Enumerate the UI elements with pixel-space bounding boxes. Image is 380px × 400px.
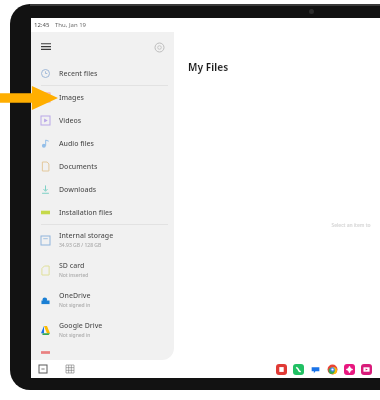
staticText: SD card [59,261,85,271]
button[interactable]: Google Drive [31,315,174,345]
staticText: Not inserted [59,272,89,279]
button[interactable]: Installation files [31,201,174,224]
button[interactable]: Settings [150,38,168,56]
staticText: Videos [59,116,82,126]
staticText: Select an item to [331,222,371,229]
button[interactable]: Menu [36,37,56,57]
staticText: Thu, Jan 19 [55,21,87,29]
staticText: Not signed in [59,302,91,309]
staticText: OneDrive [59,291,91,301]
button[interactable]: App [327,364,338,375]
button[interactable] [31,345,174,359]
button[interactable]: App [310,364,321,375]
button[interactable]: SD card [31,255,174,285]
staticText: Recent files [59,69,98,79]
button[interactable]: App [344,364,355,375]
button[interactable]: App [361,364,372,375]
staticText: Documents [59,162,98,172]
staticText: Google Drive [59,321,103,331]
button[interactable]: Downloads [31,178,174,201]
button[interactable]: Internal storage [31,225,174,255]
button[interactable]: Recent files [31,62,174,85]
staticText: Installation files [59,208,113,218]
staticText: 34.93 GB / 128 GB [59,242,102,249]
staticText: My Files [188,60,229,74]
staticText: Not signed in [59,332,91,339]
button[interactable]: App [293,364,304,375]
button[interactable]: Videos [31,109,174,132]
button[interactable]: Images [31,86,174,109]
staticText: Images [59,93,84,103]
button[interactable]: Audio files [31,132,174,155]
staticText: Internal storage [59,231,114,241]
button[interactable]: OneDrive [31,285,174,315]
button[interactable]: All apps [63,362,77,376]
staticText: Audio files [59,139,94,149]
staticText: Downloads [59,185,97,195]
button[interactable]: App [276,364,287,375]
button[interactable]: Documents [31,155,174,178]
button[interactable]: Recents [36,362,50,376]
staticText: 12:45 [34,21,50,29]
